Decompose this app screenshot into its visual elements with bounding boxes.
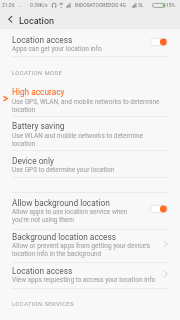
- staticText: 0.39K/s: [30, 2, 48, 8]
- staticText: INDOSATOOREDOO 4G: [75, 2, 126, 8]
- staticText: Use GPS, WLAN, and mobile networks to de…: [12, 98, 164, 114]
- staticText: View apps requesting to access your loca…: [12, 276, 156, 284]
- staticText: Location access: [12, 266, 73, 276]
- button[interactable]: [0, 229, 180, 261]
- staticText: Allow background location: [12, 198, 110, 208]
- staticText: Device only: [12, 156, 54, 166]
- staticText: Use WLAN and mobile networks to determin…: [12, 132, 164, 148]
- staticText: LOCATION SERVICES: [12, 300, 74, 307]
- staticText: High accuracy: [12, 87, 65, 97]
- button[interactable]: Location access toggle: [147, 36, 170, 48]
- staticText: Use GPS to determine your location: [12, 166, 115, 174]
- button[interactable]: [0, 262, 180, 287]
- button[interactable]: [0, 80, 180, 116]
- staticText: 15%: [166, 2, 176, 8]
- staticText: 21:26: [2, 2, 15, 8]
- staticText: Allow apps to use location service when …: [12, 208, 132, 224]
- staticText: Location access: [12, 35, 73, 45]
- button[interactable]: [0, 117, 180, 150]
- staticText: Battery saving: [12, 121, 65, 131]
- staticText: Apps can get your location info: [12, 45, 102, 53]
- button[interactable]: Allow background location toggle: [147, 203, 170, 215]
- staticText: Location: [19, 16, 55, 27]
- staticText: 3L: [138, 2, 144, 8]
- button[interactable]: Location access: [158, 267, 174, 281]
- button[interactable]: [0, 29, 180, 56]
- button[interactable]: Back: [2, 11, 19, 29]
- button[interactable]: [0, 193, 180, 228]
- button[interactable]: [0, 151, 180, 176]
- staticText: LOCATION MODE: [12, 69, 63, 76]
- staticText: Allow or prevent apps from getting your …: [12, 242, 152, 258]
- button[interactable]: Background location access: [158, 237, 174, 251]
- staticText: ...: [19, 2, 23, 8]
- staticText: Background location access: [12, 232, 117, 242]
